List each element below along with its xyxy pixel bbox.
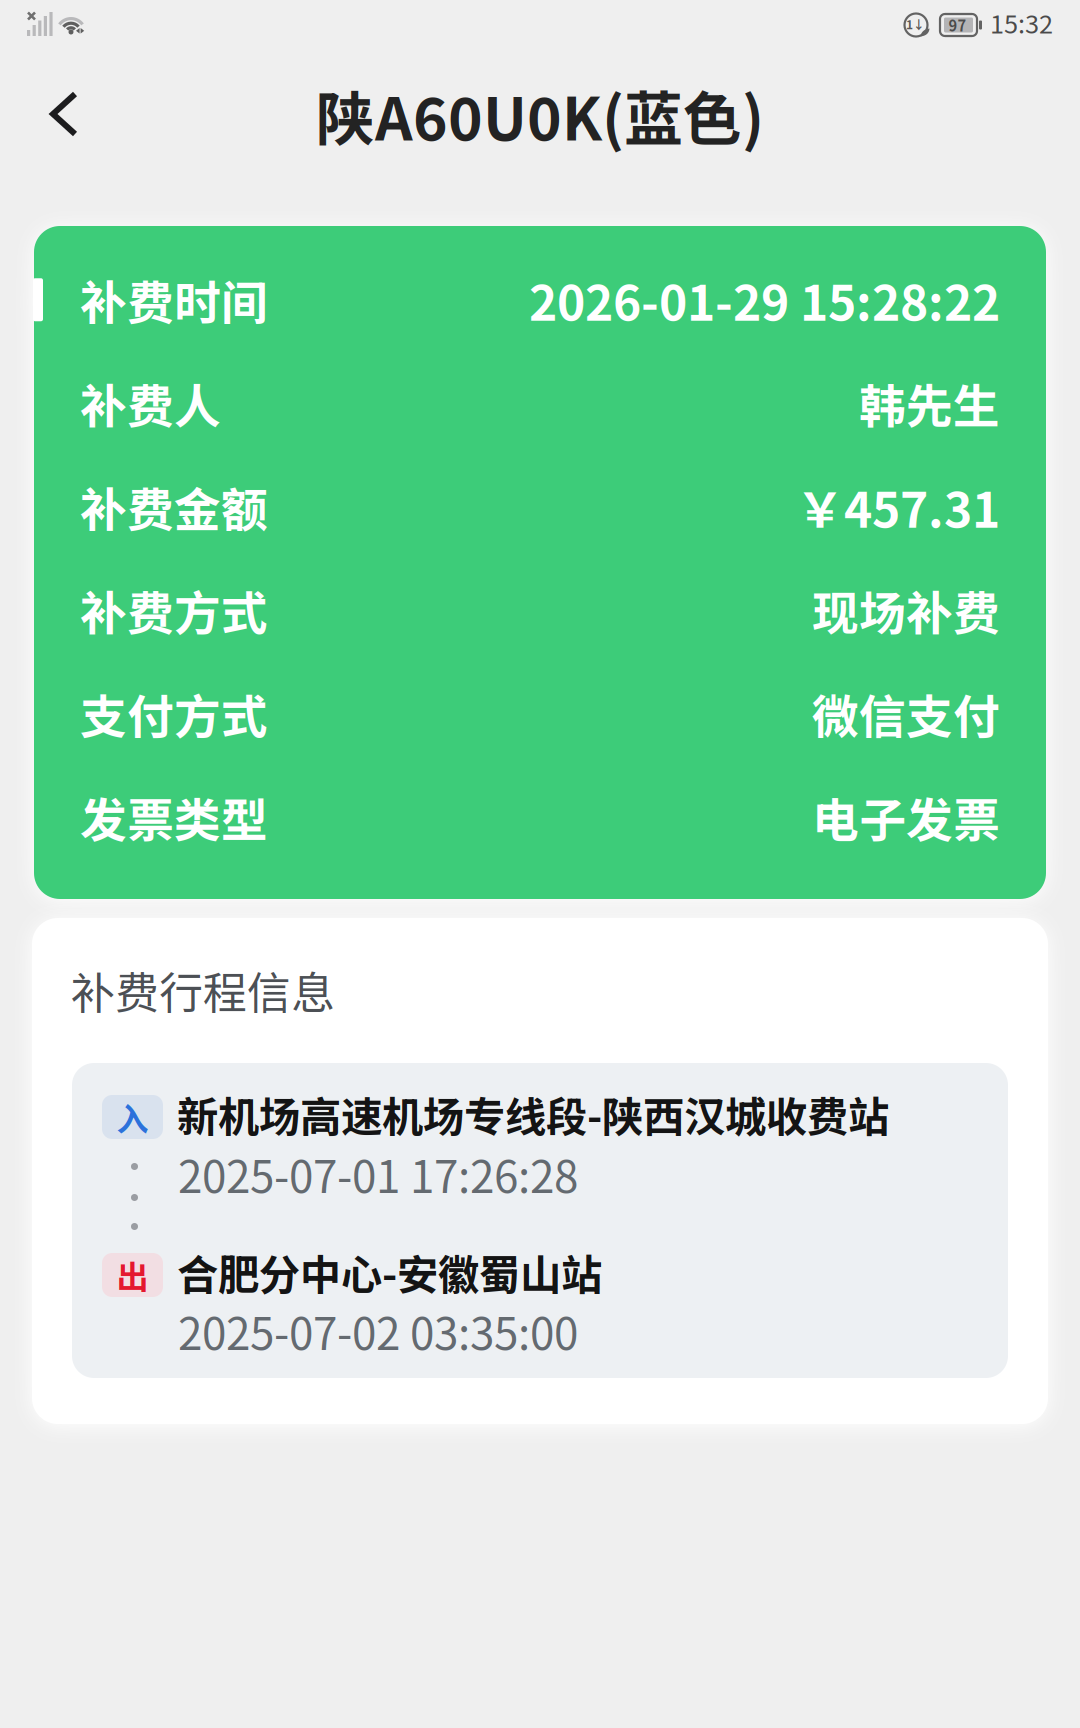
button[interactable]: Back bbox=[0, 65, 120, 163]
staticText: 新机场高速机场专线段-陕西汉城收费站 bbox=[177, 1084, 889, 1144]
staticText: 支付方式 bbox=[80, 680, 268, 748]
staticText: 入 bbox=[116, 1094, 148, 1140]
staticText: 补费人 bbox=[80, 369, 221, 437]
staticText: 补费时间 bbox=[80, 266, 268, 334]
staticText: 2026-01-29 15:28:22 bbox=[529, 265, 1000, 334]
staticText: 韩先生 bbox=[859, 369, 1000, 437]
staticText: 97 bbox=[948, 14, 966, 36]
staticText: ￥457.31 bbox=[796, 472, 1000, 541]
staticText: 合肥分中心-安徽蜀山站 bbox=[177, 1242, 602, 1302]
staticText: 2025-07-01 17:26:28 bbox=[178, 1142, 578, 1206]
staticText: 现场补费 bbox=[812, 576, 1000, 644]
staticText: 发票类型 bbox=[80, 783, 268, 851]
staticText: 出 bbox=[116, 1252, 148, 1298]
staticText: 电子发票 bbox=[812, 783, 1000, 851]
staticText: 微信支付 bbox=[812, 680, 1000, 748]
staticText: 补费金额 bbox=[80, 473, 268, 541]
staticText: 陕A60U0K(蓝色) bbox=[316, 72, 764, 157]
staticText: 1↓ bbox=[906, 15, 925, 33]
staticText: 15:32 bbox=[990, 4, 1053, 41]
staticText: 补费方式 bbox=[80, 576, 268, 644]
staticText: 2025-07-02 03:35:00 bbox=[178, 1299, 578, 1363]
staticText: 补费行程信息 bbox=[71, 958, 335, 1022]
